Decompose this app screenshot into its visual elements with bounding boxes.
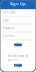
staticText: Password [3,27,15,30]
staticText: Email [3,19,9,22]
staticText: Confirm [3,34,14,38]
staticText: Full name [3,11,16,14]
staticText: Sign In [15,62,21,69]
staticText: Sign Up [10,1,26,6]
button[interactable]: Sign In [14,64,22,67]
staticText: Already have an account? [7,54,28,61]
staticText: Create [14,41,22,48]
button[interactable]: Create [14,43,22,46]
